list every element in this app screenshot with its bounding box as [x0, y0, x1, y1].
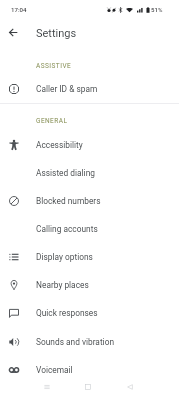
- button[interactable]: Calling accounts: [0, 215, 179, 243]
- staticText: Caller ID & spam: [36, 84, 98, 94]
- button[interactable]: Caller ID & spam: [0, 75, 179, 103]
- button[interactable]: Display options: [0, 243, 179, 271]
- button[interactable]: Voicemail: [0, 356, 179, 384]
- button[interactable]: Accessibility: [0, 131, 179, 159]
- button[interactable]: Assisted dialing: [0, 159, 179, 187]
- staticText: Nearby places: [36, 280, 89, 290]
- button[interactable]: Blocked numbers: [0, 187, 179, 215]
- button[interactable]: Back: [0, 19, 26, 45]
- staticText: Blocked numbers: [36, 196, 101, 206]
- staticText: Voicemail: [36, 365, 73, 375]
- button[interactable]: Recent apps: [38, 378, 56, 396]
- staticText: Quick responses: [36, 308, 98, 318]
- button[interactable]: Quick responses: [0, 299, 179, 327]
- staticText: Calling accounts: [36, 224, 98, 234]
- staticText: Accessibility: [36, 140, 83, 150]
- button[interactable]: Sounds and vibration: [0, 328, 179, 356]
- staticText: ASSISTIVE: [36, 62, 72, 70]
- staticText: Settings: [36, 27, 77, 40]
- staticText: Display options: [36, 252, 93, 262]
- staticText: 17:04: [11, 6, 27, 13]
- staticText: Sounds and vibration: [36, 337, 115, 347]
- staticText: 51%: [151, 6, 163, 13]
- staticText: GENERAL: [36, 117, 68, 125]
- button[interactable]: Nearby places: [0, 271, 179, 299]
- button[interactable]: Back: [121, 378, 139, 396]
- button[interactable]: Home: [79, 378, 97, 396]
- staticText: Assisted dialing: [36, 168, 95, 178]
